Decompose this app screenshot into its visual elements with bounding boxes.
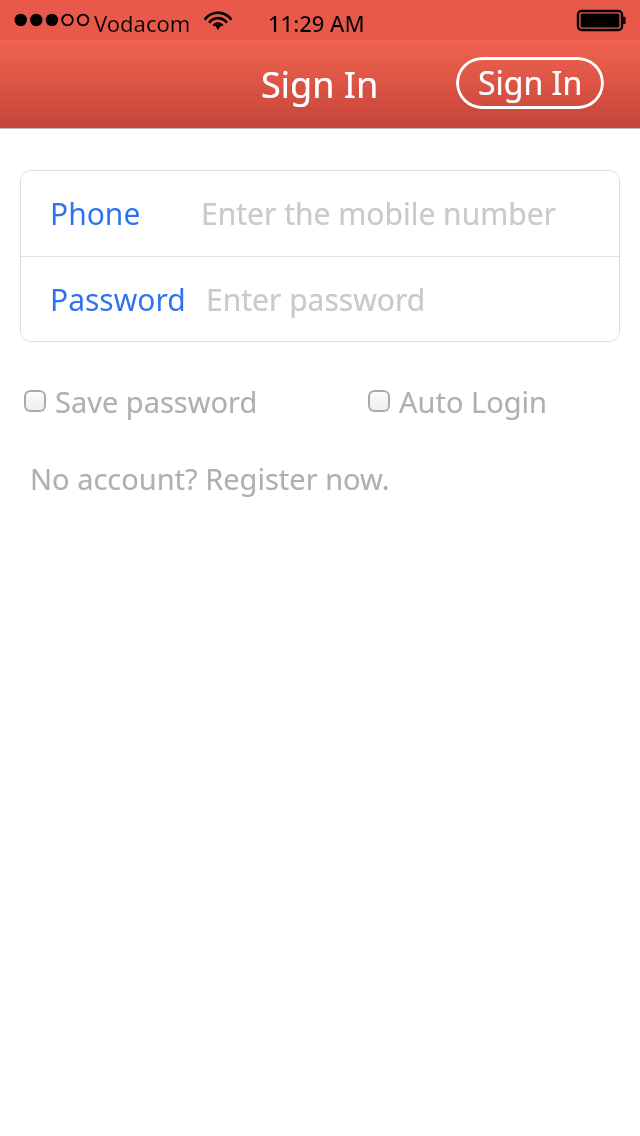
button[interactable]: Auto Login xyxy=(368,381,547,421)
button[interactable]: Password xyxy=(20,257,620,342)
button[interactable]: Phone xyxy=(20,170,620,256)
staticText: Enter the mobile number xyxy=(201,193,556,234)
staticText: No account? Register now. xyxy=(30,459,390,498)
staticText: Save password xyxy=(55,382,258,421)
staticText: Enter password xyxy=(206,279,426,320)
button[interactable]: Sign In xyxy=(456,57,604,109)
staticText: Password xyxy=(50,279,186,320)
staticText: 11:29 AM xyxy=(268,8,365,38)
staticText: Vodacom xyxy=(94,8,191,38)
staticText: Phone xyxy=(50,193,141,234)
staticText: Sign In xyxy=(261,60,379,109)
staticText: Sign In xyxy=(478,61,583,105)
button[interactable]: No account? Register now. xyxy=(30,459,390,498)
staticText: Auto Login xyxy=(399,382,547,421)
button[interactable]: Save password xyxy=(24,381,258,421)
